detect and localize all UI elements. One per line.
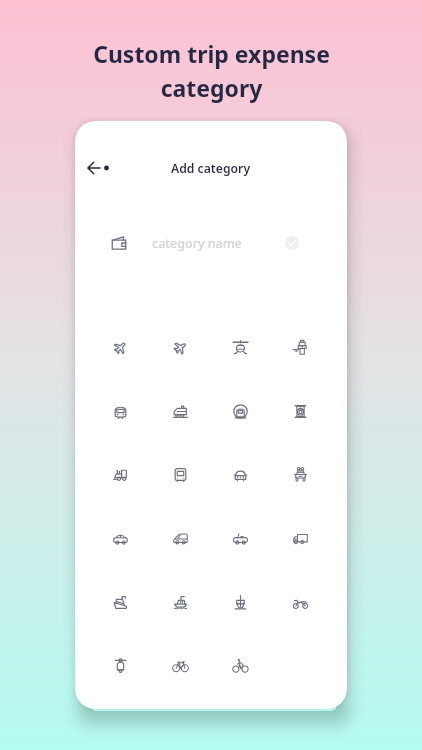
button[interactable]: category icon — [163, 648, 197, 682]
button[interactable]: category icon — [283, 521, 317, 555]
button[interactable]: category icon — [163, 330, 197, 364]
button[interactable]: category icon — [223, 394, 257, 428]
button[interactable]: category icon — [283, 330, 317, 364]
staticText: Custom trip expense category — [93, 38, 330, 103]
button[interactable]: category icon — [103, 648, 137, 682]
button[interactable]: category icon — [283, 394, 317, 428]
button[interactable]: category icon — [223, 521, 257, 555]
staticText: category name — [152, 235, 242, 252]
button[interactable]: category icon — [163, 585, 197, 619]
button[interactable]: category icon — [283, 585, 317, 619]
button[interactable]: category name — [75, 217, 347, 261]
button[interactable]: Back — [85, 153, 115, 183]
button[interactable]: category icon — [163, 394, 197, 428]
button[interactable]: category icon — [103, 521, 137, 555]
staticText: Add category — [171, 160, 251, 177]
button[interactable]: category icon — [103, 330, 137, 364]
button[interactable]: category icon — [163, 457, 197, 491]
button[interactable]: category icon — [103, 394, 137, 428]
button[interactable]: category icon — [103, 457, 137, 491]
button[interactable]: category icon — [223, 648, 257, 682]
button[interactable]: category icon — [223, 330, 257, 364]
button[interactable]: category icon — [103, 585, 137, 619]
button[interactable]: category icon — [283, 457, 317, 491]
button[interactable]: category icon — [223, 457, 257, 491]
button[interactable]: category icon — [163, 521, 197, 555]
button[interactable]: category icon — [223, 585, 257, 619]
